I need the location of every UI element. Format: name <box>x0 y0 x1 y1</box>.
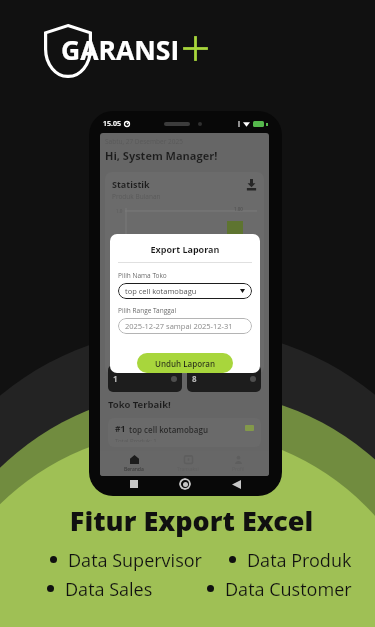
staticText: Unduh Laporan <box>155 358 216 369</box>
button[interactable]: #1 <box>108 418 261 447</box>
staticText: top cell kotamobagu <box>129 424 208 435</box>
staticText: Export Laporan <box>118 243 252 255</box>
staticText: 8 <box>192 373 197 384</box>
staticText: Total Produk: 1 <box>115 437 157 442</box>
staticText: Data Produk <box>247 548 352 573</box>
staticText: Produk Bulanan <box>112 192 161 201</box>
staticText: #1 <box>115 423 126 435</box>
staticText: Hi, System Manager! <box>105 148 218 163</box>
staticText: GARANSI <box>61 32 180 68</box>
staticText: 2025-12-27 sampai 2025-12-31 <box>125 321 233 331</box>
staticText: Data Sales <box>65 577 153 602</box>
button[interactable]: top cell kotamobagu <box>118 283 252 299</box>
button[interactable]: 8 <box>187 365 261 392</box>
staticText: Data Customer <box>225 577 352 602</box>
staticText: 15.05 <box>103 119 121 129</box>
staticText: Pilih Nama Toko <box>118 271 167 280</box>
staticText: Beranda <box>124 466 144 473</box>
staticText: 1.0 <box>116 208 123 214</box>
staticText: Pilih Range Tanggal <box>118 306 177 315</box>
staticText: 1 <box>113 373 118 384</box>
button[interactable]: Beranda <box>115 453 153 475</box>
button[interactable]: 2025-12-27 sampai 2025-12-31 <box>118 318 252 334</box>
staticText: Toko Terbaik! <box>108 398 171 411</box>
button[interactable]: Download <box>246 179 257 190</box>
button[interactable]: Home <box>179 478 191 490</box>
staticText: 0.6 <box>116 260 123 266</box>
staticText: 1.00 <box>234 206 243 212</box>
button[interactable]: Unduh Laporan <box>137 353 233 373</box>
staticText: Data Supervisor <box>68 548 202 573</box>
button[interactable]: 1 <box>108 365 182 392</box>
button[interactable]: Back <box>232 480 241 489</box>
staticText: Statistik <box>112 178 150 190</box>
staticText: top cell kotamobagu <box>125 286 197 296</box>
staticText: Fitur Export Excel <box>4 502 375 539</box>
